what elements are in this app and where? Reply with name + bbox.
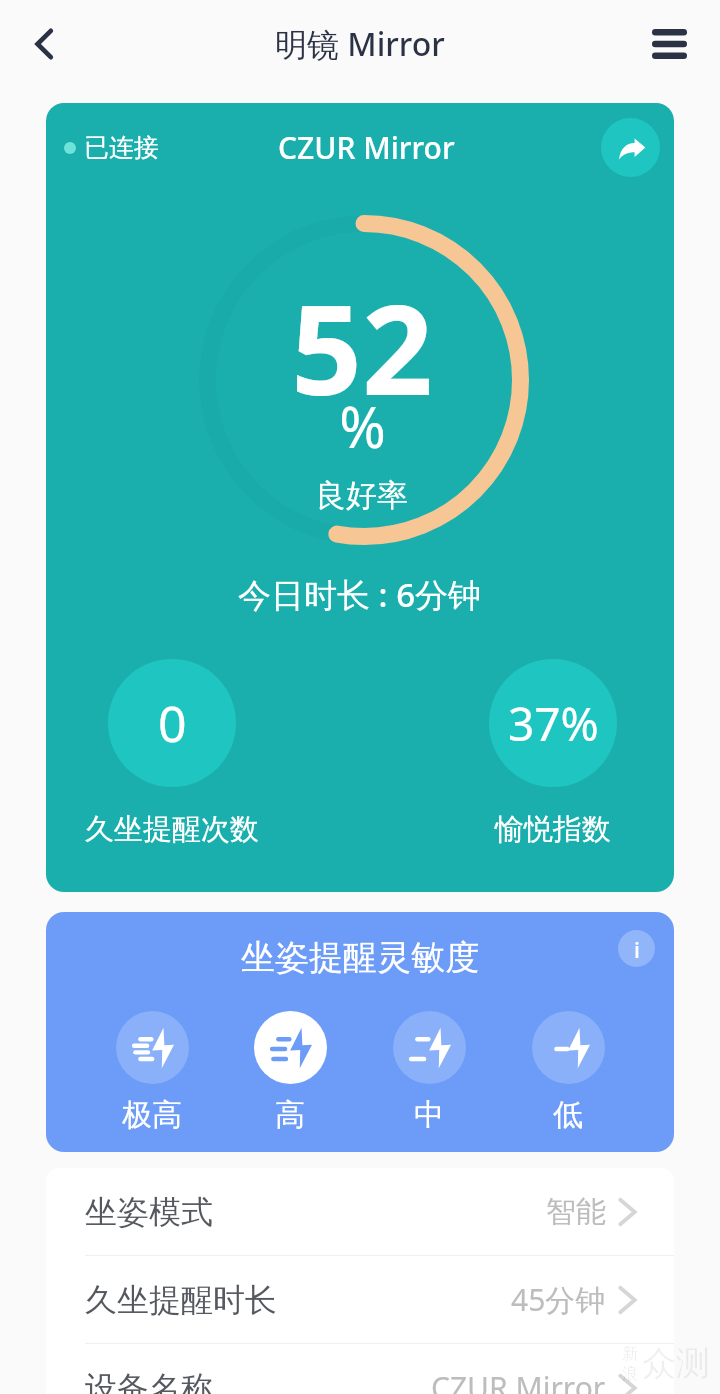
staticText: 良好率 — [315, 476, 408, 515]
button[interactable]: 高 — [230, 1011, 350, 1134]
button[interactable]: 久坐提醒时长 — [46, 1256, 674, 1343]
staticText: CZUR Mirror — [431, 1367, 606, 1394]
staticText: 久坐提醒时长 — [85, 1280, 277, 1320]
button[interactable]: 坐姿模式 — [46, 1168, 674, 1255]
staticText: 低 — [553, 1096, 583, 1134]
staticText: i — [634, 934, 640, 964]
button[interactable]: Info — [618, 930, 655, 967]
staticText: 浪 — [622, 1364, 638, 1384]
staticText: 智能 — [546, 1193, 606, 1231]
staticText: 坐姿模式 — [85, 1192, 213, 1232]
staticText: 45分钟 — [511, 1279, 606, 1320]
button[interactable]: Back — [16, 16, 72, 72]
staticText: 中 — [414, 1096, 444, 1134]
staticText: 众测 — [642, 1342, 710, 1385]
staticText: 愉悦指数 — [495, 811, 611, 848]
staticText: 设备名称 — [85, 1368, 213, 1394]
button[interactable]: 极高 — [92, 1011, 212, 1134]
staticText: 52 — [291, 262, 433, 431]
staticText: 0 — [158, 689, 187, 757]
staticText: 今日时长 : 6分钟 — [238, 572, 482, 617]
button[interactable]: 中 — [369, 1011, 489, 1134]
staticText: 高 — [275, 1096, 305, 1134]
staticText: 久坐提醒次数 — [85, 811, 259, 848]
button[interactable]: 设备名称 — [46, 1344, 674, 1394]
staticText: 已连接 — [84, 132, 159, 163]
staticText: 明镜 Mirror — [275, 22, 445, 66]
staticText: 37% — [508, 692, 599, 755]
staticText: 新 — [622, 1344, 638, 1364]
button[interactable]: 低 — [508, 1011, 628, 1134]
button[interactable]: Menu — [641, 16, 697, 72]
staticText: % — [339, 388, 386, 464]
button[interactable]: Share — [601, 118, 660, 177]
staticText: CZUR Mirror — [278, 127, 455, 168]
staticText: 坐姿提醒灵敏度 — [241, 936, 479, 979]
staticText: 极高 — [122, 1096, 182, 1134]
